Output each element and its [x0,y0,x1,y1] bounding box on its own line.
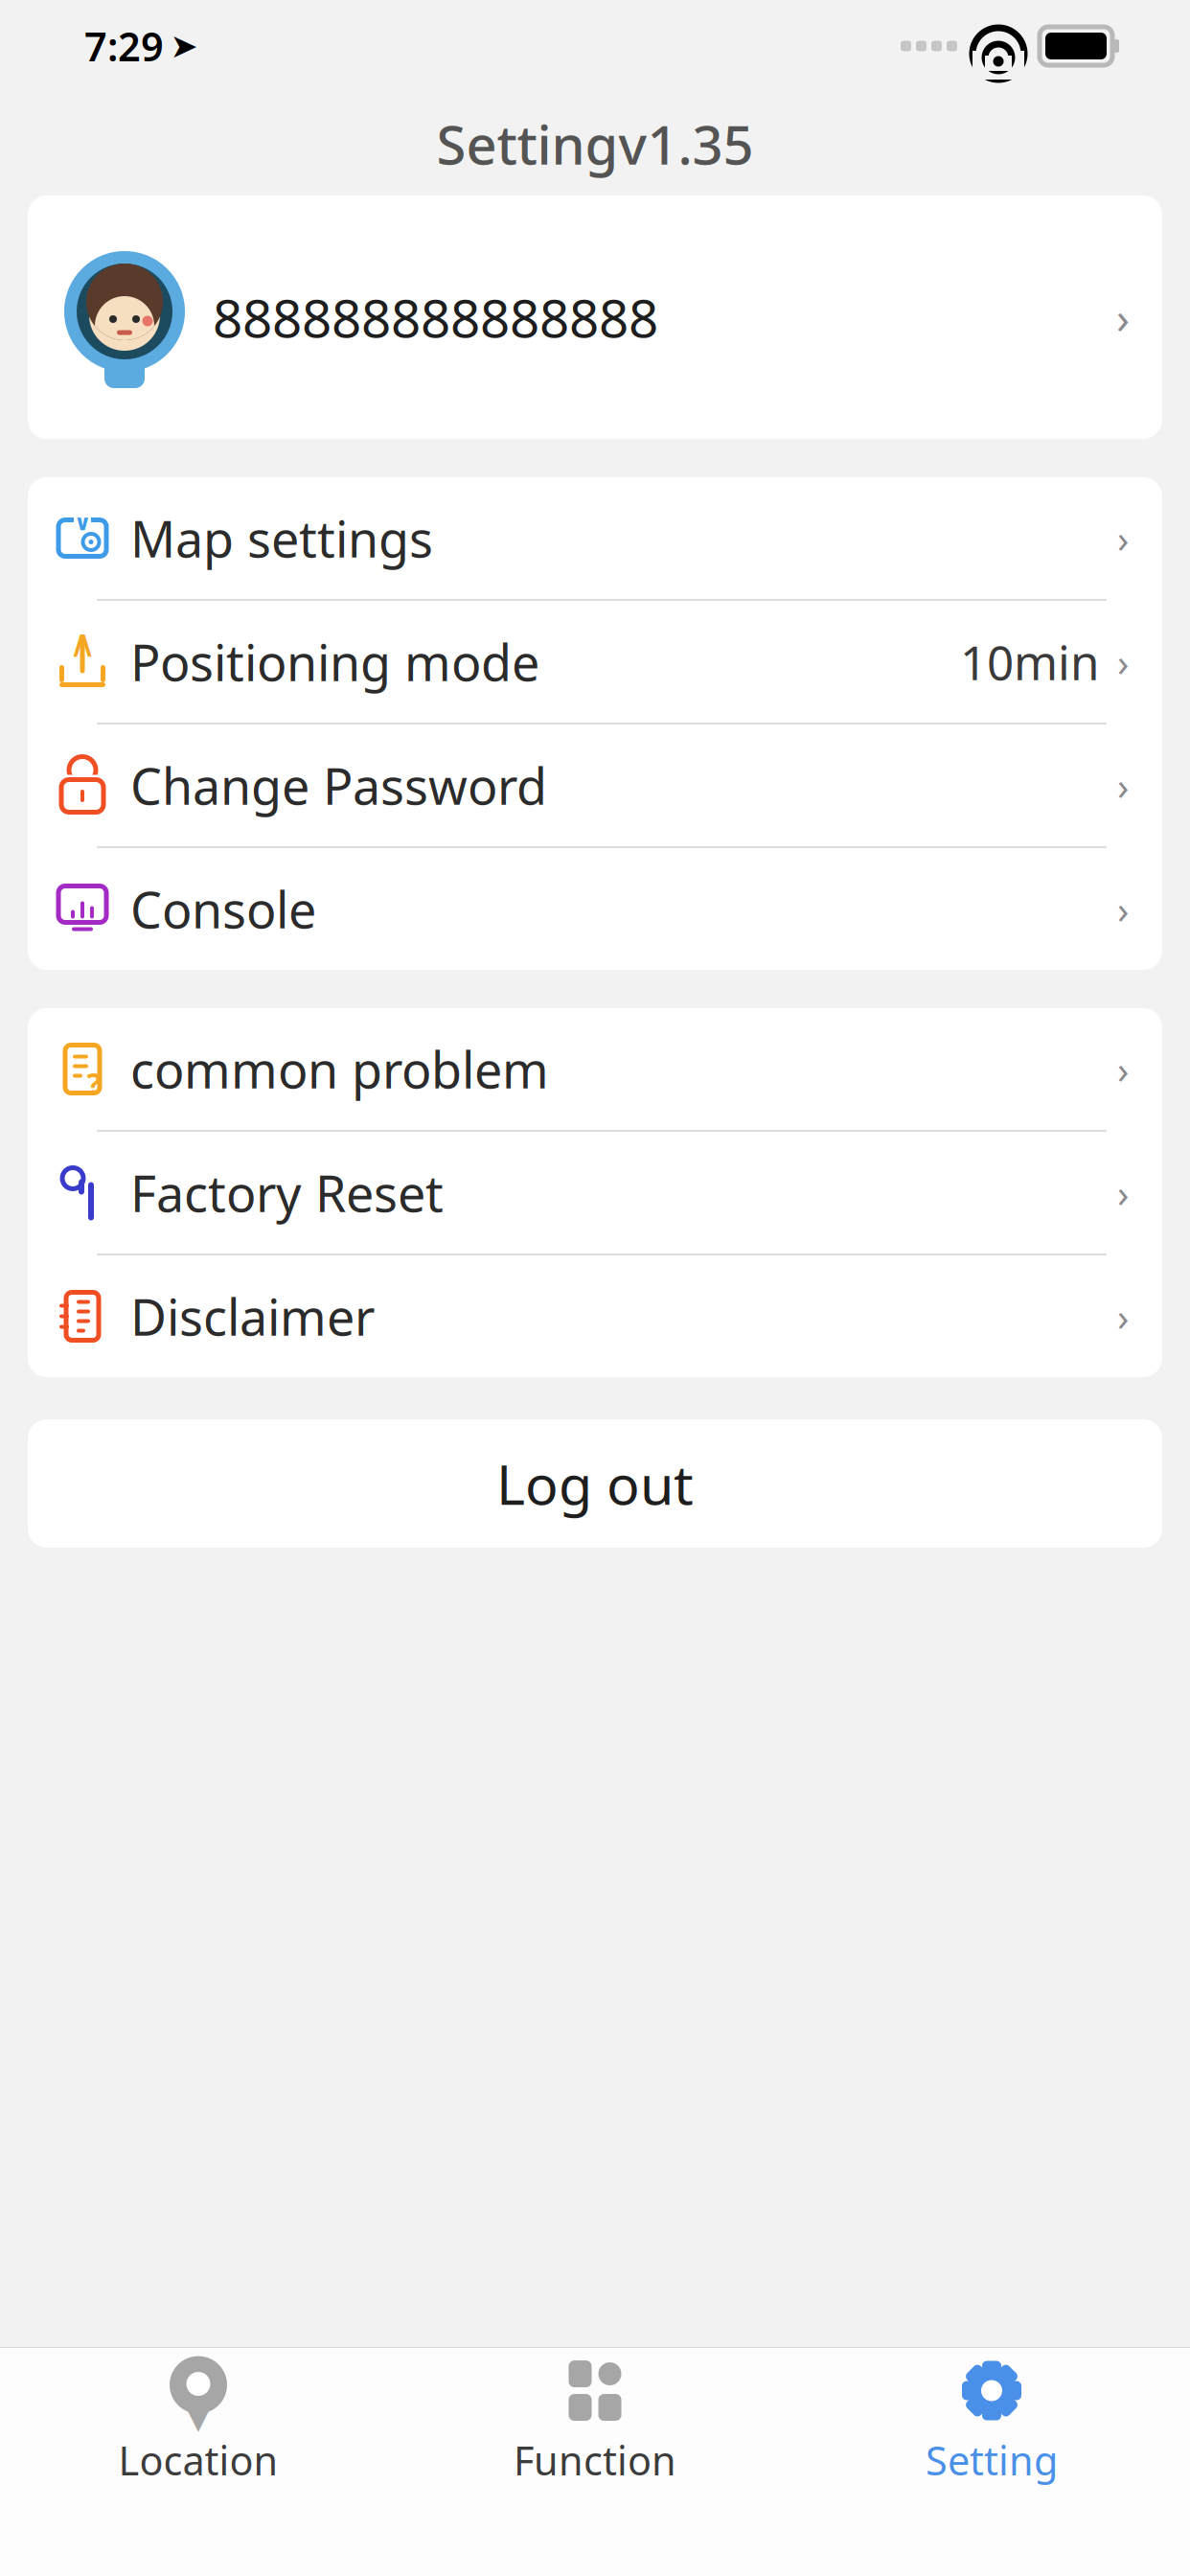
staticText: common problem [130,1036,549,1102]
button[interactable]: ▼ [0,2340,397,2502]
staticText: ∨ [74,510,91,535]
staticText: ? [87,1063,101,1104]
staticText: ∧ [69,622,96,665]
button[interactable]: Disclaimer [28,1255,1162,1377]
button[interactable]: Function [397,2340,793,2502]
staticText: Console [130,876,316,942]
staticText: › [1117,1291,1129,1342]
staticText: ➤ [170,27,198,65]
staticText: › [1116,288,1130,346]
staticText: › [1117,883,1129,934]
staticText: 10min [960,630,1099,693]
button[interactable]: Change Password [28,724,1162,846]
staticText: Change Password [130,752,547,819]
staticText: 888888888888888 [213,282,658,352]
button[interactable]: Log out [28,1419,1162,1548]
button[interactable]: ∧ [28,601,1162,723]
staticText: › [1117,1167,1129,1218]
button[interactable]: ? [28,1008,1162,1130]
staticText: Log out [496,1447,694,1520]
button[interactable]: Setting [793,2340,1190,2502]
button[interactable]: Factory Reset [28,1132,1162,1253]
staticText: Map settings [130,505,433,571]
staticText: Function [514,2434,676,2486]
staticText: › [1117,513,1129,563]
button[interactable]: Console [28,848,1162,970]
staticText: Factory Reset [130,1160,444,1226]
staticText: Setting [926,2434,1058,2486]
button[interactable]: 888888888888888 [28,195,1162,439]
staticText: ▼ [182,2387,215,2436]
staticText: › [1117,1044,1129,1094]
staticText: Disclaimer [130,1283,375,1349]
staticText: 7:29 [84,20,164,72]
staticText: › [1117,760,1129,811]
button[interactable]: ∨ [28,477,1162,599]
staticText: Settingv1.35 [436,108,754,179]
staticText: › [1117,636,1129,687]
staticText: Positioning mode [130,629,539,695]
staticText: Location [118,2434,278,2486]
